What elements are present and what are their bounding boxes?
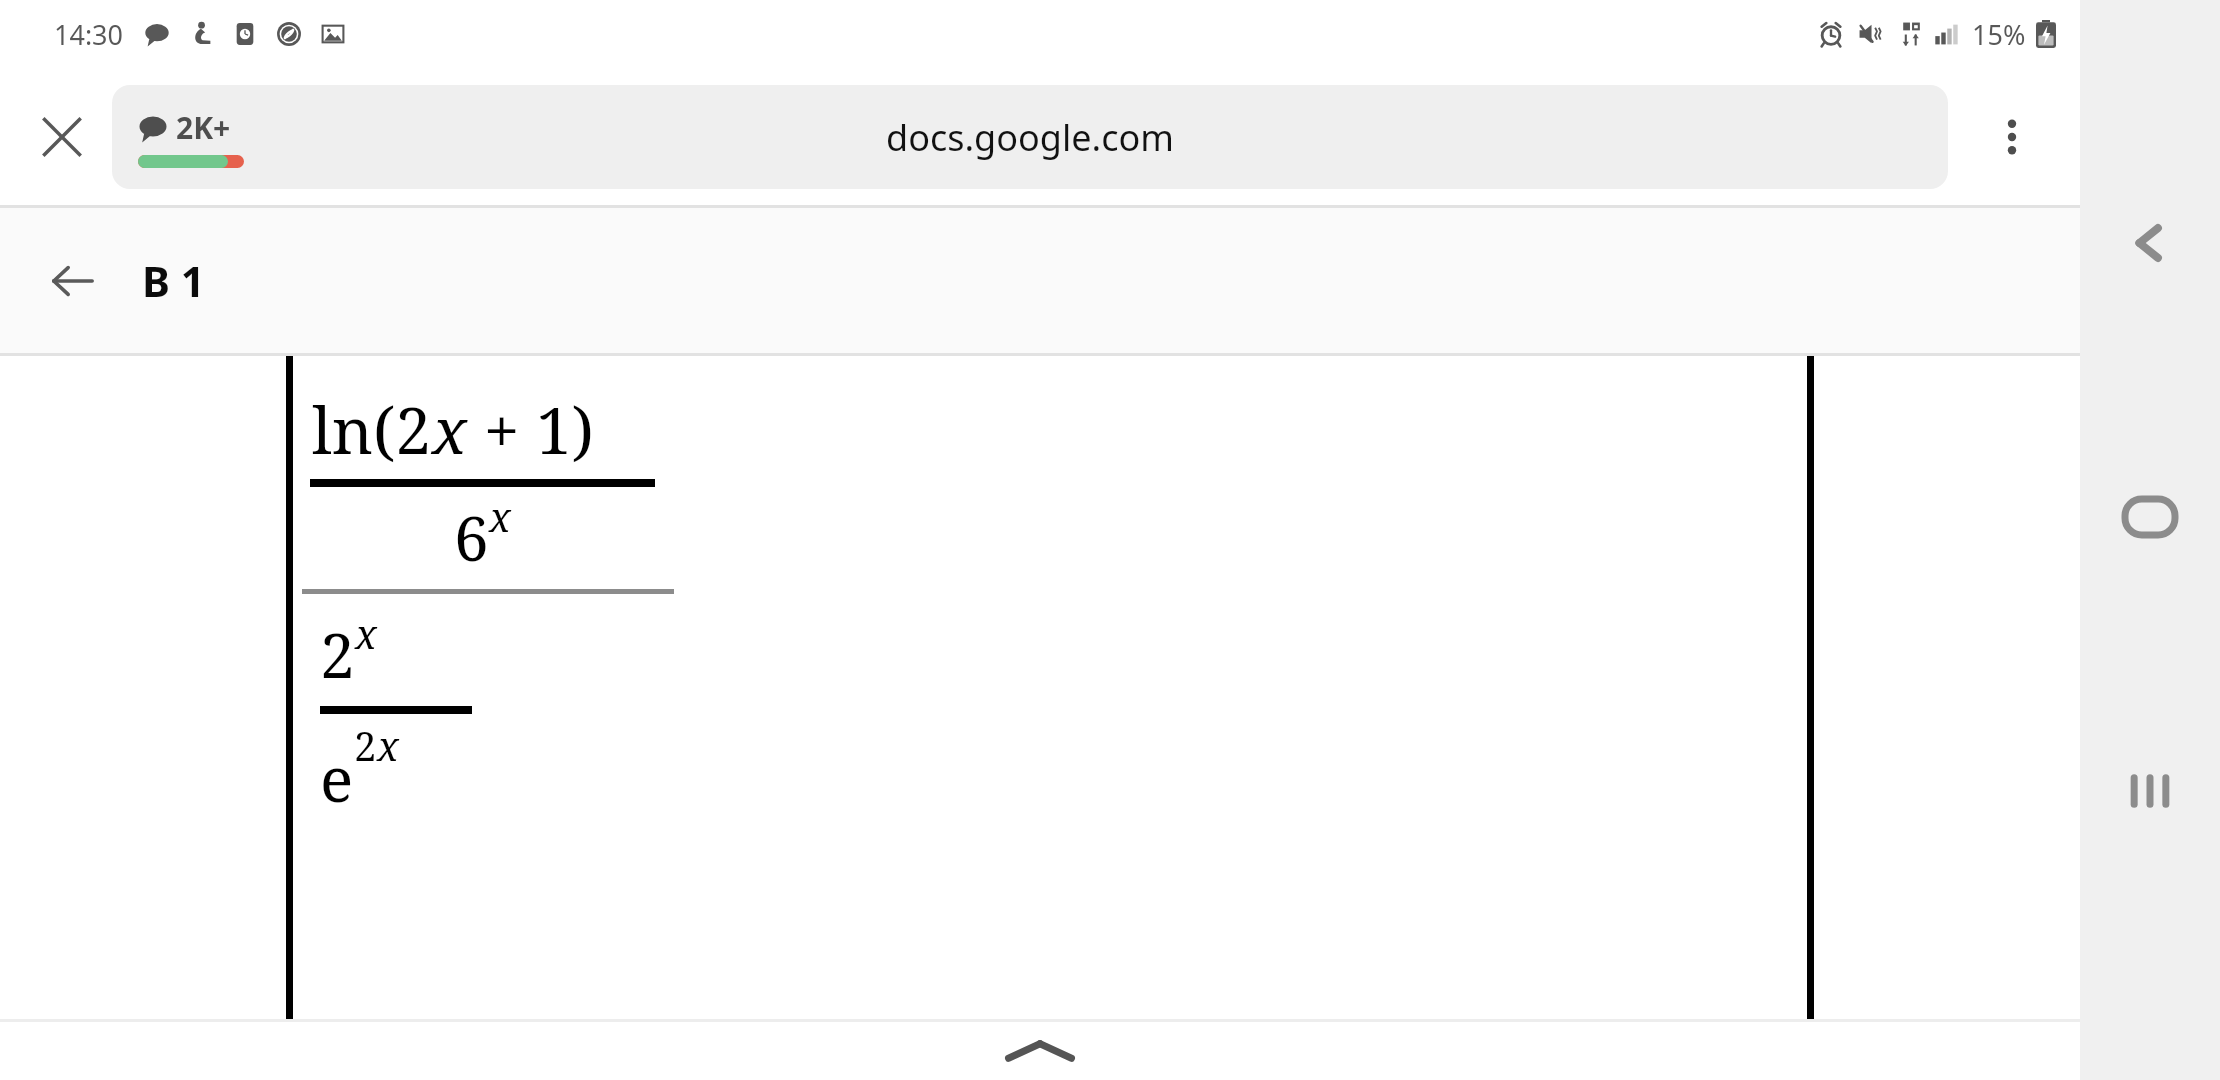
staticText: e <box>320 736 354 820</box>
staticText: 2 <box>354 718 377 772</box>
button[interactable]: Back <box>2102 195 2198 291</box>
staticText: 2K+ <box>176 107 231 148</box>
staticText: x <box>432 386 467 473</box>
staticText: B 1 <box>142 252 205 309</box>
staticText: + 1) <box>467 386 594 473</box>
button[interactable]: Recent apps <box>2102 743 2198 839</box>
staticText: 15% <box>1972 16 2026 53</box>
staticText: x <box>489 489 511 543</box>
button[interactable]: 2K+ <box>112 85 1948 189</box>
staticText: x <box>355 606 377 660</box>
staticText: 14:30 <box>54 16 124 53</box>
button[interactable]: More options <box>1974 99 2050 175</box>
button[interactable]: Expand <box>0 1022 2080 1080</box>
staticText: 6 <box>454 495 489 579</box>
button[interactable]: Back <box>32 241 112 321</box>
button[interactable]: Home <box>2102 469 2198 565</box>
staticText: x <box>377 718 399 772</box>
staticText: ln(2 <box>312 386 432 473</box>
staticText: 2 <box>320 612 355 696</box>
button[interactable]: Close <box>22 97 102 177</box>
staticText: docs.google.com <box>886 113 1174 162</box>
